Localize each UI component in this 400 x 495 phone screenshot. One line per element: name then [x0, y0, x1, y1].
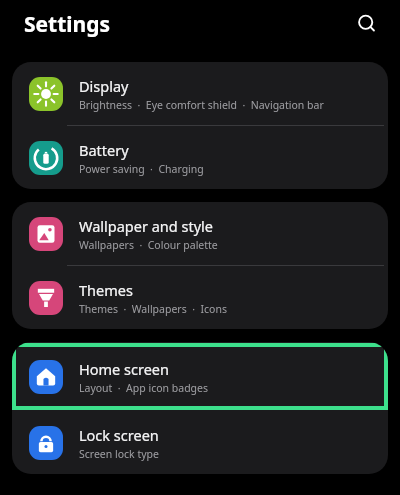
- staticText: Wallpapers · Colour palette: [79, 238, 218, 252]
- staticText: Home screen: [79, 359, 169, 379]
- staticText: Themes: [79, 280, 133, 300]
- staticText: Settings: [24, 10, 111, 39]
- staticText: Themes · Wallpapers · Icons: [79, 302, 227, 316]
- staticText: Power saving · Charging: [79, 162, 204, 176]
- staticText: Wallpaper and style: [79, 216, 213, 236]
- button[interactable]: Wallpaper and style: [12, 202, 388, 265]
- button[interactable]: Battery: [12, 126, 388, 189]
- button[interactable]: Home screen: [12, 342, 388, 411]
- button[interactable]: Search: [352, 9, 382, 39]
- staticText: Brightness · Eye comfort shield · Naviga…: [79, 98, 324, 112]
- button[interactable]: Themes: [12, 266, 388, 329]
- staticText: Display: [79, 76, 129, 96]
- staticText: Layout · App icon badges: [79, 381, 209, 395]
- button[interactable]: Lock screen: [12, 411, 388, 474]
- staticText: Lock screen: [79, 425, 159, 445]
- staticText: Battery: [79, 140, 129, 160]
- button[interactable]: Display: [12, 62, 388, 125]
- staticText: Screen lock type: [79, 447, 159, 461]
